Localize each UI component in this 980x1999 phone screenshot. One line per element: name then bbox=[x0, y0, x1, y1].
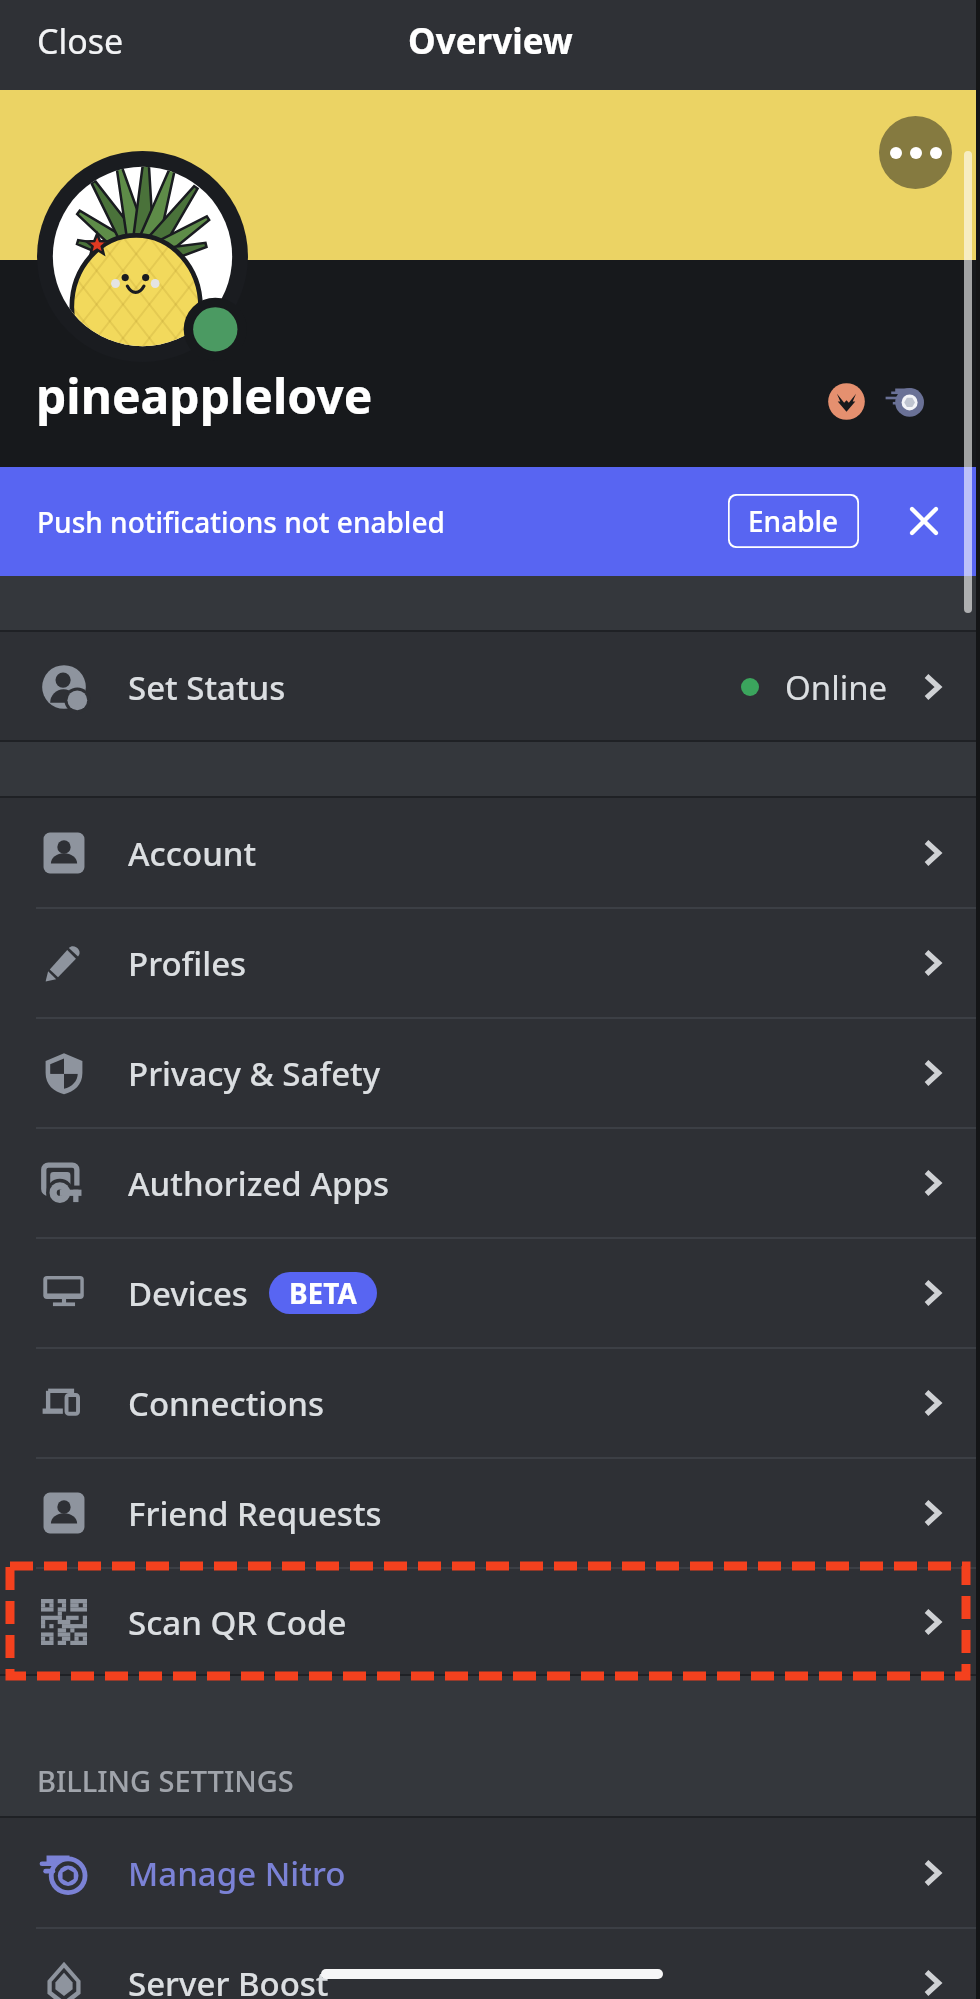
staticText: Online bbox=[785, 665, 888, 710]
staticText: Connections bbox=[128, 1381, 325, 1426]
button[interactable]: More options bbox=[879, 116, 952, 189]
staticText: Push notifications not enabled bbox=[37, 503, 445, 541]
staticText: Account bbox=[128, 831, 257, 876]
staticText: pineapplelove bbox=[36, 363, 373, 428]
button[interactable]: Devices bbox=[0, 1238, 980, 1348]
staticText: BETA bbox=[289, 1274, 357, 1312]
staticText: Close bbox=[37, 18, 124, 64]
staticText: Profiles bbox=[128, 941, 247, 986]
button[interactable]: Server Boost bbox=[0, 1928, 980, 1999]
button[interactable]: Manage Nitro bbox=[0, 1818, 980, 1928]
button[interactable]: Scan QR Code bbox=[0, 1568, 980, 1676]
button[interactable]: Account bbox=[0, 798, 980, 908]
staticText: Privacy & Safety bbox=[128, 1051, 381, 1096]
button[interactable]: Set Status bbox=[0, 632, 980, 742]
staticText: Enable bbox=[748, 502, 839, 540]
button[interactable]: Close bbox=[16, 4, 145, 78]
button[interactable]: Dismiss bbox=[884, 481, 964, 561]
staticText: Server Boost bbox=[128, 1961, 329, 1999]
staticText: Manage Nitro bbox=[128, 1851, 346, 1896]
staticText: Friend Requests bbox=[128, 1491, 382, 1536]
button[interactable]: Profiles bbox=[0, 908, 980, 1018]
button[interactable]: Authorized Apps bbox=[0, 1128, 980, 1238]
button[interactable]: Privacy & Safety bbox=[0, 1018, 980, 1128]
button[interactable]: Friend Requests bbox=[0, 1458, 980, 1568]
button[interactable]: Connections bbox=[0, 1348, 980, 1458]
staticText: Authorized Apps bbox=[128, 1161, 389, 1206]
staticText: BILLING SETTINGS bbox=[37, 1761, 294, 1800]
staticText: Overview bbox=[408, 17, 573, 65]
button[interactable]: Enable bbox=[728, 494, 859, 548]
staticText: Devices bbox=[128, 1271, 248, 1316]
staticText: Set Status bbox=[128, 665, 286, 710]
staticText: Scan QR Code bbox=[128, 1600, 347, 1645]
